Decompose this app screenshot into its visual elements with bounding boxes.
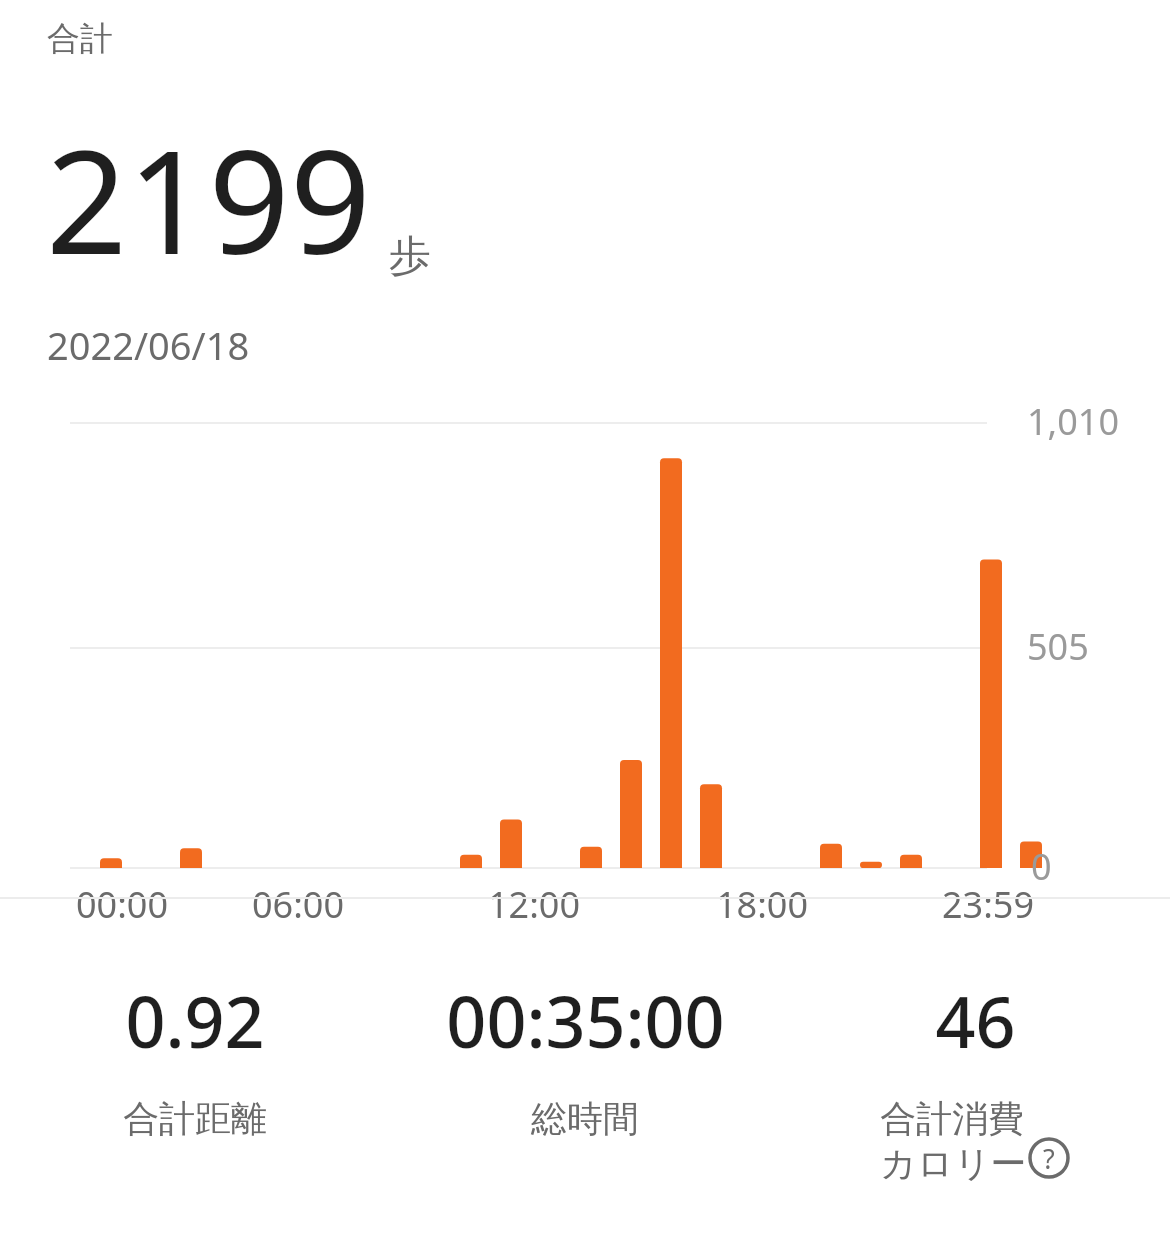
staticText: 2022/06/18 xyxy=(47,319,250,371)
staticText: 505 xyxy=(1027,622,1089,671)
staticText: 0 xyxy=(1031,842,1052,891)
button[interactable]: ヘルプ xyxy=(1027,1136,1071,1180)
staticText: 12:00 xyxy=(488,880,581,929)
staticText: 06:00 xyxy=(252,880,345,929)
staticText: 46 xyxy=(935,973,1016,1068)
staticText: 合計 xyxy=(47,18,113,60)
button[interactable]: 0.92 xyxy=(0,973,390,1141)
staticText: 合計消費 xyxy=(880,1096,1024,1141)
staticText: 2199 xyxy=(46,102,371,295)
staticText: 1,010 xyxy=(1027,397,1120,446)
staticText: 00:35:00 xyxy=(446,973,725,1068)
staticText: 歩 xyxy=(389,230,431,283)
staticText: 00:00 xyxy=(76,880,169,929)
staticText: ? xyxy=(1043,1140,1055,1177)
staticText: 0.92 xyxy=(125,973,265,1068)
staticText: カロリー xyxy=(880,1141,1027,1186)
button[interactable]: 46 xyxy=(780,973,1170,1186)
button[interactable]: 00:35:00 xyxy=(390,973,780,1141)
staticText: 23:59 xyxy=(942,880,1035,929)
staticText: 総時間 xyxy=(531,1096,639,1141)
staticText: 合計距離 xyxy=(123,1096,267,1141)
staticText: 18:00 xyxy=(716,880,809,929)
